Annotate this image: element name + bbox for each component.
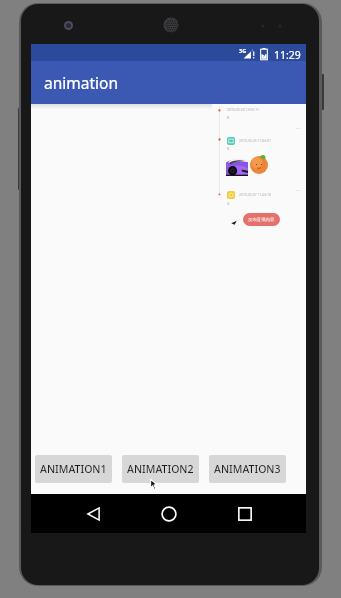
staticText: ANIMATION2 — [127, 462, 194, 476]
button[interactable]: Back — [77, 498, 109, 530]
staticText: ANIMATION1 — [40, 462, 107, 476]
button[interactable]: Recent apps — [229, 498, 261, 530]
staticText: 2019-05-07 11:24:18 — [239, 192, 272, 197]
button[interactable]: ANIMATION2 — [122, 455, 199, 483]
staticText: 8 — [227, 115, 230, 121]
button[interactable]: Home — [153, 498, 185, 530]
button[interactable]: ANIMATION1 — [35, 455, 112, 483]
staticText: 11:29 — [274, 48, 301, 62]
staticText: ••• — [296, 188, 301, 193]
staticText: 8 — [227, 146, 230, 152]
button[interactable]: 发布直播内容 — [243, 213, 280, 226]
staticText: ANIMATION3 — [214, 462, 281, 476]
staticText: animation — [44, 72, 119, 93]
button[interactable]: ANIMATION3 — [209, 455, 286, 483]
staticText: 发布直播内容 — [248, 217, 275, 223]
staticText: 2019-05-04 13:56:11 — [227, 107, 260, 112]
staticText: 3G — [239, 47, 247, 54]
staticText: 2019-05-05 11:04:01 — [239, 138, 272, 143]
staticText: 4 — [227, 201, 230, 207]
staticText: ••• — [296, 126, 301, 131]
